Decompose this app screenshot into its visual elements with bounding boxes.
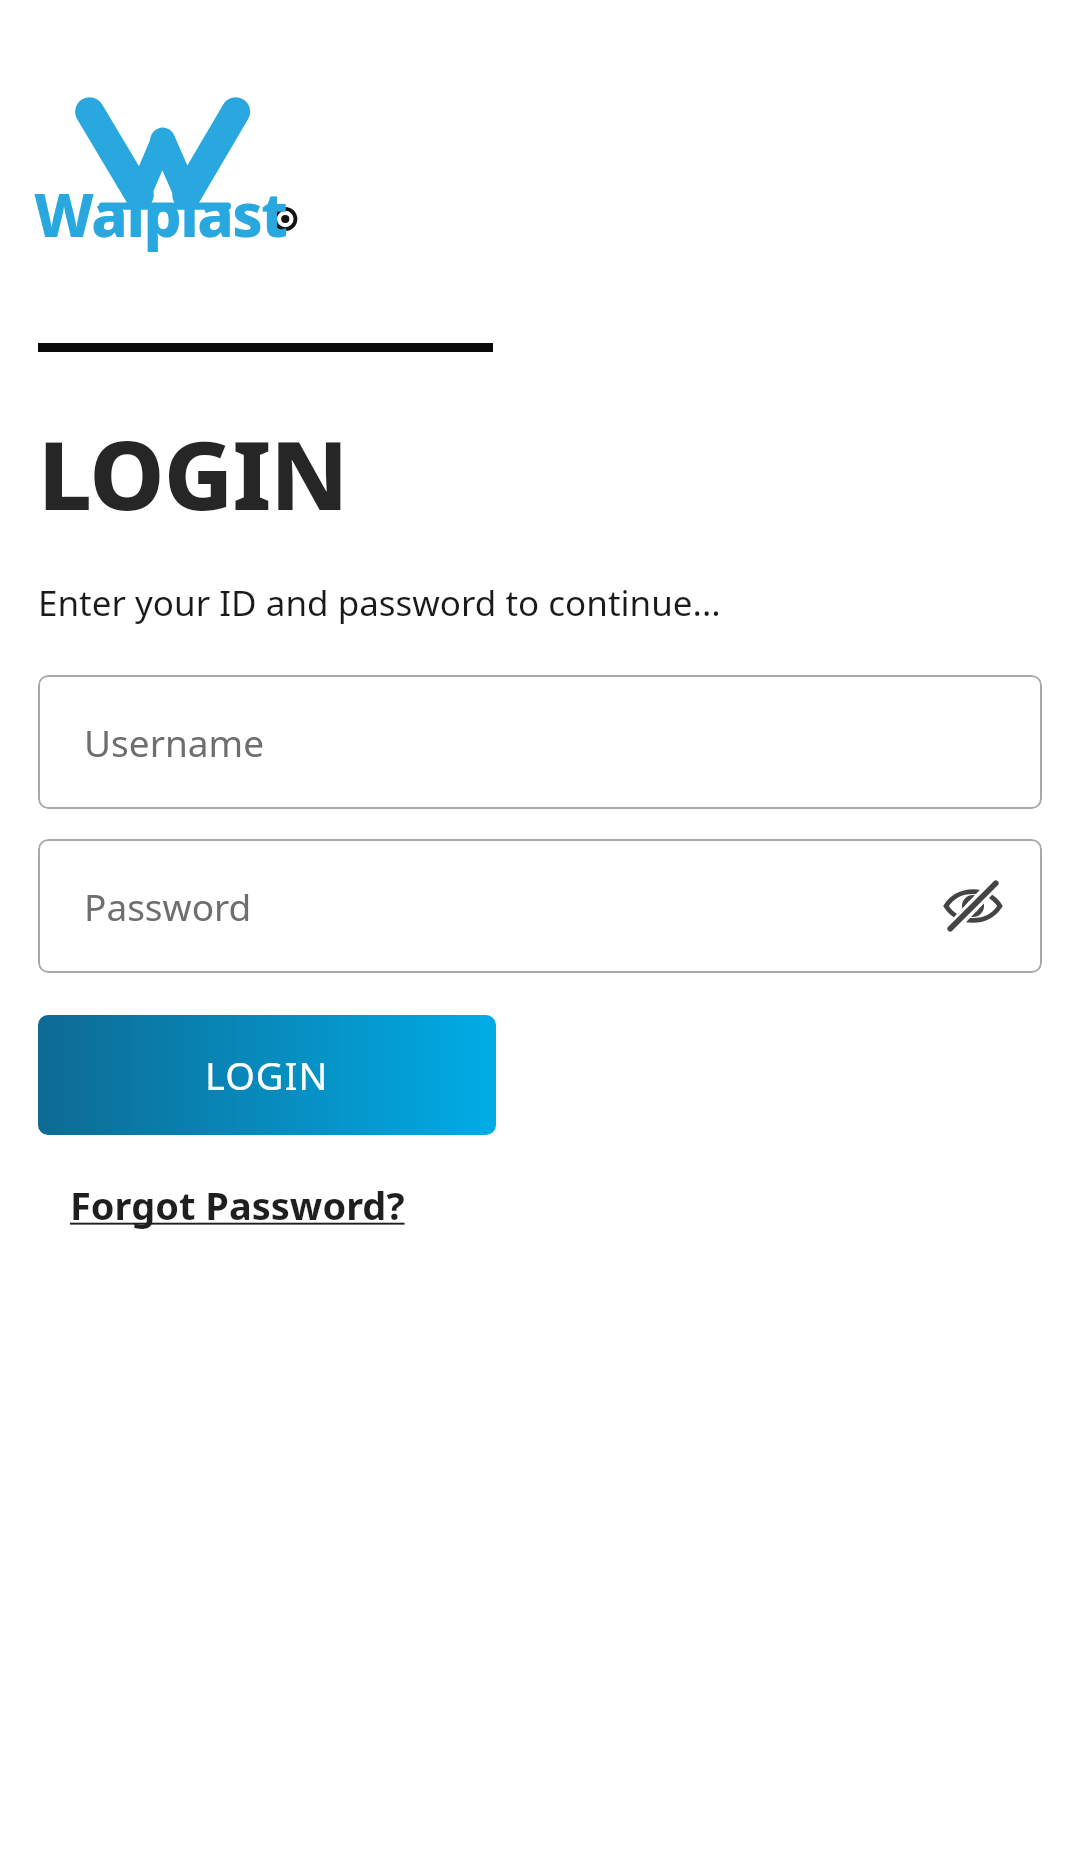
staticText: Forgot Password?	[70, 1179, 405, 1231]
staticText: LOGIN	[205, 1049, 329, 1101]
button[interactable]: LOGIN	[38, 1015, 496, 1135]
button[interactable]: Password	[38, 839, 1042, 973]
staticText: Enter your ID and password to continue..…	[38, 579, 721, 627]
staticText: LOGIN	[38, 408, 348, 537]
staticText: Username	[84, 717, 265, 767]
staticText: Password	[84, 881, 252, 931]
button[interactable]: Username	[38, 675, 1042, 809]
button[interactable]: Show password	[934, 867, 1012, 945]
button[interactable]: Forgot Password?	[70, 1171, 405, 1239]
staticText: Walplast	[34, 173, 287, 255]
